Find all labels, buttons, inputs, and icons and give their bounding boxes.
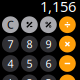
staticText: 8 <box>26 37 32 51</box>
button[interactable]: 9 <box>40 36 57 52</box>
staticText: 7 <box>7 37 13 51</box>
staticText: 9 <box>45 37 51 51</box>
staticText: 5 <box>26 56 32 71</box>
staticText: 1 <box>7 76 13 80</box>
button[interactable]: Divide <box>59 16 76 33</box>
button[interactable]: 7 <box>2 36 19 52</box>
button[interactable]: Plus minus <box>21 16 38 33</box>
button[interactable]: Percent <box>40 16 57 33</box>
staticText: 2 <box>26 76 32 80</box>
button[interactable]: 3 <box>40 74 57 80</box>
staticText: C <box>7 18 14 32</box>
button[interactable]: 5 <box>21 55 38 72</box>
button[interactable]: 1 <box>2 74 19 80</box>
button[interactable]: Plus <box>59 74 76 80</box>
button[interactable]: C <box>2 16 19 33</box>
button[interactable]: Multiply <box>59 36 76 52</box>
staticText: 1,156 <box>40 0 76 16</box>
button[interactable]: Minus <box>59 55 76 72</box>
button[interactable]: 2 <box>21 74 38 80</box>
staticText: 3 <box>45 76 51 80</box>
staticText: 4 <box>7 56 13 71</box>
staticText: 6 <box>45 56 51 71</box>
button[interactable]: 6 <box>40 55 57 72</box>
button[interactable]: 4 <box>2 55 19 72</box>
button[interactable]: 8 <box>21 36 38 52</box>
